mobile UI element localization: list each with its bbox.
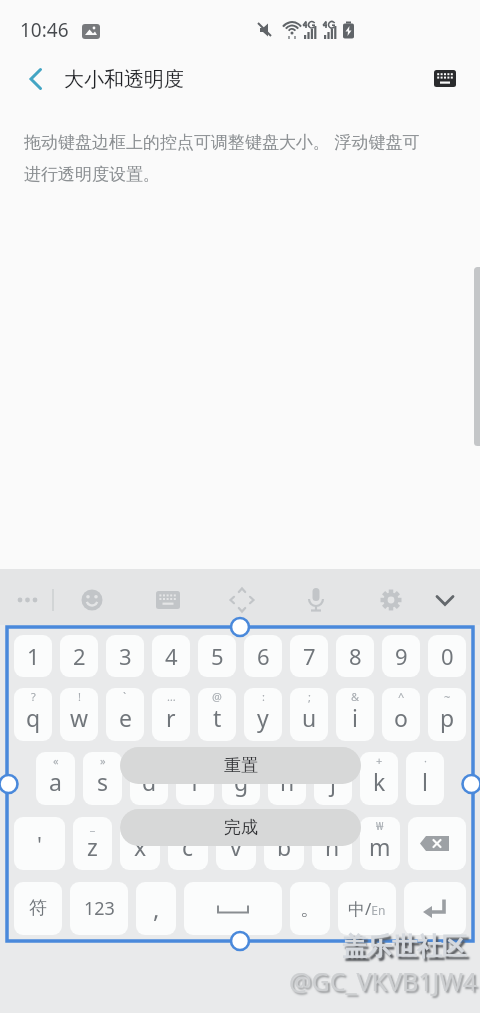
button[interactable]: , (136, 882, 176, 935)
staticText: » (100, 753, 106, 768)
staticText: 。 (300, 896, 320, 921)
staticText: 9 (395, 641, 408, 671)
button[interactable]: 4 (152, 635, 190, 677)
staticText: @ (212, 689, 222, 704)
button[interactable]: 重置 (120, 747, 361, 784)
staticText: 0 (441, 641, 454, 671)
staticText: q (26, 702, 41, 733)
staticText: p (440, 702, 455, 733)
button[interactable] (136, 569, 204, 625)
staticText: a (49, 766, 62, 797)
button[interactable] (0, 48, 56, 110)
button[interactable] (273, 569, 342, 625)
button[interactable] (408, 817, 466, 870)
button[interactable]: - (130, 752, 168, 805)
button[interactable]: ¡ (312, 817, 352, 870)
button[interactable]: 1 (14, 635, 52, 677)
staticText: _ (90, 818, 95, 833)
staticText: g (234, 766, 249, 797)
staticText: k (373, 766, 386, 797)
staticText: 4 (165, 641, 178, 671)
button[interactable]: \ (216, 817, 256, 870)
button[interactable] (411, 569, 480, 625)
staticText: @GC_VKVB1JW4 (289, 964, 477, 998)
staticText: ₩ (376, 818, 384, 833)
button[interactable] (204, 569, 273, 625)
button[interactable]: ` (106, 688, 144, 741)
staticText: l (422, 766, 428, 797)
staticText: z (87, 831, 98, 862)
button[interactable]: 。 (290, 882, 330, 935)
staticText: 符 (29, 897, 47, 920)
button[interactable]: 6 (244, 635, 282, 677)
button[interactable]: 符 (14, 882, 62, 935)
button[interactable]: | (264, 817, 304, 870)
button[interactable]: & (336, 688, 374, 741)
button[interactable]: @ (198, 688, 236, 741)
button[interactable]: 3 (106, 635, 144, 677)
button[interactable]: ' (14, 817, 65, 870)
button[interactable]: / (168, 817, 208, 870)
button[interactable]: 9 (382, 635, 420, 677)
staticText: 123 (84, 896, 115, 921)
button[interactable]: 完成 (120, 809, 361, 846)
staticText: … (167, 689, 176, 704)
button[interactable] (68, 569, 136, 625)
button[interactable]: = (176, 752, 214, 805)
button[interactable]: 2 (60, 635, 98, 677)
button[interactable]: _ (73, 817, 112, 870)
button[interactable] (404, 882, 466, 935)
button[interactable] (184, 882, 282, 935)
button[interactable]: 5 (198, 635, 236, 677)
staticText: i (352, 702, 358, 733)
button[interactable]: « (36, 752, 75, 805)
staticText: 重置 (224, 755, 258, 776)
button[interactable] (342, 569, 411, 625)
staticText: 8 (349, 641, 362, 671)
button[interactable]: ~ (428, 688, 466, 741)
button[interactable]: — (120, 817, 160, 870)
staticText: u (302, 702, 317, 733)
button[interactable]: 123 (70, 882, 128, 935)
button[interactable]: … (152, 688, 190, 741)
button[interactable]: 中/En (338, 882, 396, 935)
staticText: ¥ (238, 753, 245, 768)
staticText: 7 (303, 641, 316, 671)
button[interactable]: ? (14, 688, 52, 741)
staticText: n (325, 831, 340, 862)
button[interactable]: : (244, 688, 282, 741)
button[interactable]: · (406, 752, 444, 805)
button[interactable]: ^ (382, 688, 420, 741)
button[interactable]: # (268, 752, 306, 805)
staticText: j (330, 766, 336, 797)
staticText: x (134, 831, 147, 862)
staticText: ? (31, 689, 36, 704)
button[interactable]: » (83, 752, 122, 805)
button[interactable]: + (360, 752, 398, 805)
button[interactable] (416, 48, 474, 110)
button[interactable] (0, 569, 68, 625)
button[interactable]: ¥ (222, 752, 260, 805)
staticText: 1 (27, 641, 40, 671)
button[interactable]: 0 (428, 635, 466, 677)
staticText: 大小和透明度 (64, 67, 184, 92)
button[interactable]: ; (290, 688, 328, 741)
staticText: b (277, 831, 292, 862)
button[interactable]: * (314, 752, 352, 805)
button[interactable]: ! (60, 688, 98, 741)
button[interactable]: 7 (290, 635, 328, 677)
staticText: , (153, 892, 160, 925)
staticText: h (280, 766, 295, 797)
button[interactable]: ₩ (360, 817, 400, 870)
staticText: o (394, 702, 408, 733)
button[interactable]: 8 (336, 635, 374, 677)
staticText: \ (234, 818, 239, 833)
staticText: d (142, 766, 157, 797)
staticText: 5 (211, 641, 224, 671)
staticText: 拖动键盘边框上的控点可调整键盘大小。 浮动键盘可 进行透明度设置。 (24, 130, 420, 185)
